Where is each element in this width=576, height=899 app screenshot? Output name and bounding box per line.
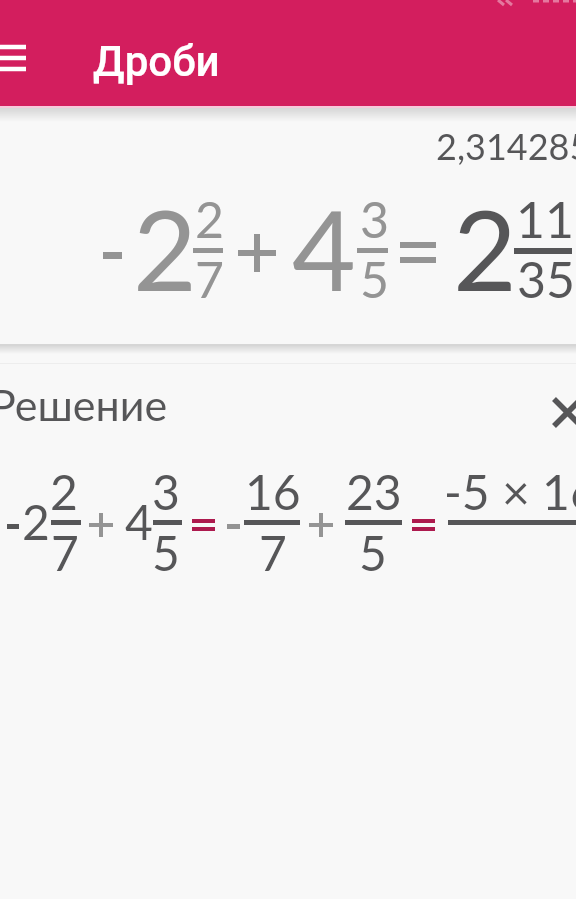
button[interactable]: Open navigation menu: [0, 24, 32, 88]
staticText: 4: [125, 493, 525, 551]
button[interactable]: Close solution: [531, 376, 576, 449]
staticText: 3: [360, 189, 576, 249]
staticText: 35: [517, 249, 576, 309]
staticText: 16: [245, 463, 576, 521]
staticText: 4: [292, 182, 576, 314]
staticText: 2: [50, 463, 450, 521]
staticText: 5: [359, 524, 576, 582]
staticText: 11: [516, 189, 576, 249]
staticText: 2: [22, 493, 422, 551]
staticText: Решение: [0, 379, 390, 431]
staticText: 5: [360, 249, 576, 309]
staticText: 2,314285714: [436, 124, 576, 167]
staticText: 2: [453, 182, 576, 314]
staticText: 5: [152, 524, 552, 582]
staticText: 23: [346, 463, 576, 521]
staticText: 2: [195, 189, 576, 249]
staticText: 7: [51, 524, 451, 582]
staticText: 7: [195, 249, 576, 309]
staticText: 7: [259, 524, 576, 582]
staticText: 2: [133, 182, 533, 314]
staticText: Дроби: [93, 37, 220, 86]
staticText: 3: [152, 463, 552, 521]
staticText: -5 × 16 + 23 × 7: [444, 463, 576, 521]
